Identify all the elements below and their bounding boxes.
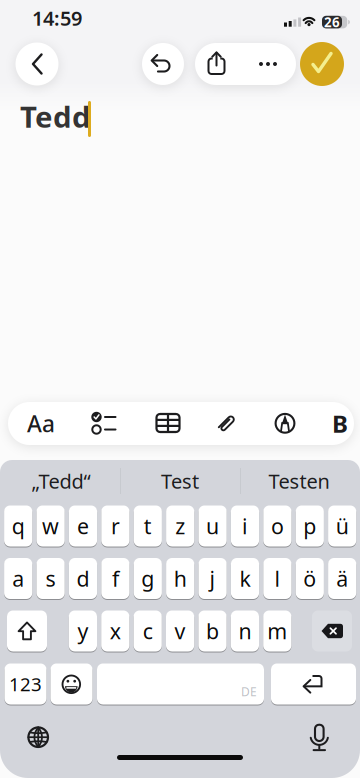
staticText: DE	[241, 684, 257, 699]
staticText: e	[77, 512, 89, 540]
staticText: s	[46, 564, 56, 593]
staticText: B	[332, 408, 348, 439]
button[interactable]	[16, 715, 60, 759]
button[interactable]: r	[101, 505, 129, 547]
button[interactable]: Testen	[241, 460, 357, 502]
button[interactable]: DE	[97, 663, 264, 705]
button[interactable]: p	[296, 505, 324, 547]
button[interactable]: f	[101, 557, 129, 599]
staticText: 123	[9, 672, 42, 696]
button[interactable]	[81, 402, 125, 445]
button[interactable]: k	[231, 557, 259, 599]
staticText: d	[76, 564, 89, 593]
staticText: q	[12, 512, 25, 540]
staticText: l	[274, 564, 280, 593]
button[interactable]	[299, 713, 343, 757]
button[interactable]: g	[134, 557, 162, 599]
button[interactable]	[263, 402, 307, 445]
button[interactable]: w	[36, 505, 65, 547]
button[interactable]: Test	[122, 460, 238, 502]
button[interactable]	[15, 42, 58, 85]
button[interactable]: l	[263, 557, 291, 599]
staticText: w	[42, 512, 59, 540]
button[interactable]: z	[166, 505, 194, 547]
staticText: „Tedd“	[31, 468, 90, 494]
button[interactable]: h	[166, 557, 194, 599]
staticText: Testen	[268, 468, 329, 494]
staticText: k	[239, 564, 250, 593]
staticText: ä	[336, 564, 348, 593]
button[interactable]: ö	[296, 557, 324, 599]
button[interactable]	[245, 43, 295, 85]
button[interactable]: e	[69, 505, 97, 547]
staticText: Test	[161, 468, 199, 494]
button[interactable]: B	[326, 402, 354, 445]
button[interactable]: „Tedd“	[3, 460, 119, 502]
button[interactable]: t	[134, 505, 162, 547]
button[interactable]	[7, 610, 47, 652]
button[interactable]	[271, 663, 356, 705]
staticText: a	[12, 564, 24, 593]
staticText: r	[111, 512, 120, 540]
staticText: m	[267, 617, 287, 645]
button[interactable]: c	[134, 610, 162, 652]
button[interactable]: i	[231, 505, 259, 547]
button[interactable]: o	[263, 505, 291, 547]
button[interactable]	[50, 663, 92, 705]
button[interactable]: ü	[328, 505, 356, 547]
staticText: v	[175, 617, 186, 645]
button[interactable]: a	[4, 557, 32, 599]
staticText: Aa	[27, 408, 55, 438]
button[interactable]: ä	[328, 557, 356, 599]
staticText: g	[141, 564, 154, 593]
staticText: c	[143, 617, 153, 645]
staticText: 14:59	[32, 5, 82, 31]
button[interactable]: q	[4, 505, 32, 547]
staticText: ü	[336, 512, 349, 540]
staticText: j	[210, 564, 216, 593]
button[interactable]: d	[69, 557, 97, 599]
staticText: z	[175, 512, 185, 540]
button[interactable]	[144, 402, 188, 445]
button[interactable]: s	[36, 557, 65, 599]
button[interactable]	[300, 42, 344, 86]
staticText: 26	[324, 13, 340, 31]
staticText: f	[112, 564, 119, 593]
staticText: i	[242, 512, 248, 540]
button[interactable]	[142, 43, 184, 85]
button[interactable]: j	[198, 557, 227, 599]
button[interactable]: v	[166, 610, 194, 652]
button[interactable]: u	[198, 505, 227, 547]
staticText: n	[238, 617, 251, 645]
staticText: x	[110, 617, 121, 645]
button[interactable]	[312, 610, 352, 652]
button[interactable]	[205, 402, 249, 445]
staticText: b	[206, 617, 219, 645]
staticText: u	[206, 512, 219, 540]
button[interactable]: m	[263, 610, 291, 652]
staticText: ö	[303, 564, 316, 593]
button[interactable]: 123	[4, 663, 46, 705]
staticText: y	[77, 617, 88, 645]
button[interactable]	[195, 43, 245, 85]
button[interactable]: b	[198, 610, 227, 652]
staticText: t	[144, 512, 152, 540]
staticText: h	[174, 564, 187, 593]
button[interactable]: x	[101, 610, 129, 652]
staticText: p	[303, 512, 316, 540]
staticText: o	[271, 512, 284, 540]
button[interactable]: n	[231, 610, 259, 652]
button[interactable]: y	[69, 610, 97, 652]
staticText: Tedd	[20, 97, 91, 136]
button[interactable]: Aa	[19, 402, 63, 445]
